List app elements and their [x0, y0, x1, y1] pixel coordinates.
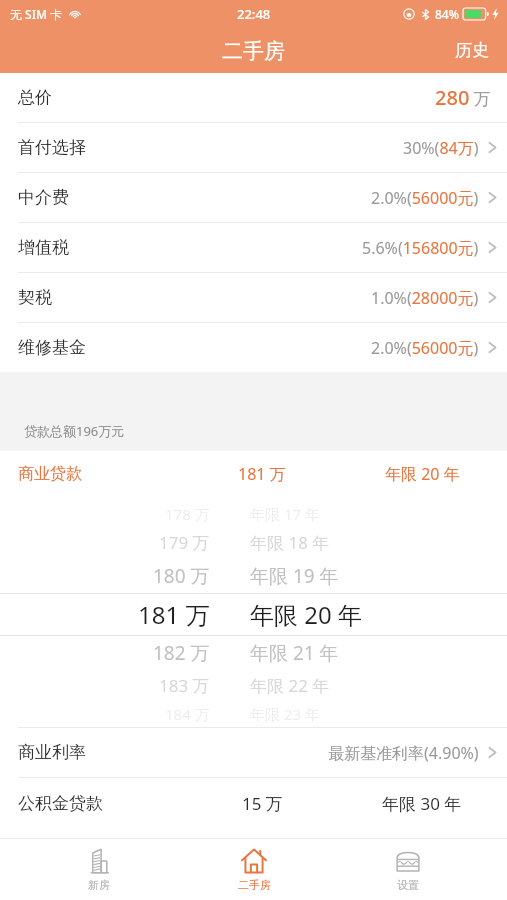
staticText: 182 万 [153, 640, 210, 666]
staticText: 首付选择 [18, 137, 86, 158]
staticText: 商业贷款 [18, 464, 82, 484]
staticText: 年限 20 年 [385, 463, 460, 485]
staticText: 年限 30 年 [382, 792, 462, 815]
button[interactable]: 维修基金 [0, 323, 507, 372]
staticText: 年限 19 年 [250, 563, 339, 589]
staticText: 年限 23 年 [250, 704, 320, 724]
staticText: 1.0%(28000元) [371, 287, 479, 309]
button[interactable]: 设置 [353, 839, 463, 900]
staticText: 年限 17 年 [250, 504, 320, 524]
staticText: 历史 [455, 40, 489, 61]
staticText: 设置 [397, 878, 419, 892]
staticText: 增值税 [18, 237, 69, 258]
staticText: 年限 21 年 [250, 640, 339, 666]
staticText: 84% [435, 6, 459, 22]
staticText: 181 万 [138, 598, 210, 631]
staticText: 中介费 [18, 187, 69, 208]
button[interactable]: 新房 [44, 839, 154, 900]
button[interactable]: 历史 [437, 28, 507, 73]
staticText: 总价 [18, 87, 52, 108]
staticText: 181 万 [238, 463, 286, 485]
staticText: 维修基金 [18, 337, 86, 358]
staticText: 184 万 [165, 704, 210, 724]
staticText: 2.0%(56000元) [371, 337, 479, 359]
button[interactable]: 178 万 [0, 497, 507, 727]
staticText: 契税 [18, 287, 52, 308]
button[interactable]: 商业贷款 [0, 451, 507, 497]
staticText: 新房 [88, 878, 110, 892]
button[interactable]: 总价 [0, 73, 507, 122]
button[interactable]: 中介费 [0, 173, 507, 222]
staticText: 5.6%(156800元) [362, 237, 479, 259]
staticText: 178 万 [165, 504, 210, 524]
button[interactable]: 增值税 [0, 223, 507, 272]
staticText: 180 万 [153, 563, 210, 589]
staticText: 183 万 [159, 674, 210, 697]
button[interactable]: 二手房 [199, 839, 309, 900]
button[interactable]: 首付选择 [0, 123, 507, 172]
button[interactable]: 商业利率 [0, 728, 507, 777]
staticText: 公积金贷款 [18, 793, 103, 814]
staticText: 二手房 [238, 878, 271, 892]
staticText: 商业利率 [18, 742, 86, 763]
staticText: 年限 20 年 [250, 598, 362, 631]
staticText: 2.0%(56000元) [371, 187, 479, 209]
staticText: 22:48 [237, 5, 271, 23]
staticText: 贷款总额196万元 [24, 422, 125, 440]
staticText: 15 万 [242, 792, 283, 815]
staticText: 年限 18 年 [250, 531, 330, 554]
staticText: 280 万 [435, 84, 491, 111]
staticText: 二手房 [222, 38, 285, 64]
staticText: 无 SIM 卡 [10, 6, 63, 22]
button[interactable]: 契税 [0, 273, 507, 322]
button[interactable]: 公积金贷款 [0, 778, 507, 828]
staticText: 最新基准利率(4.90%) [328, 742, 479, 764]
staticText: 年限 22 年 [250, 674, 330, 697]
staticText: 30%(84万) [403, 137, 479, 159]
staticText: 179 万 [159, 531, 210, 554]
